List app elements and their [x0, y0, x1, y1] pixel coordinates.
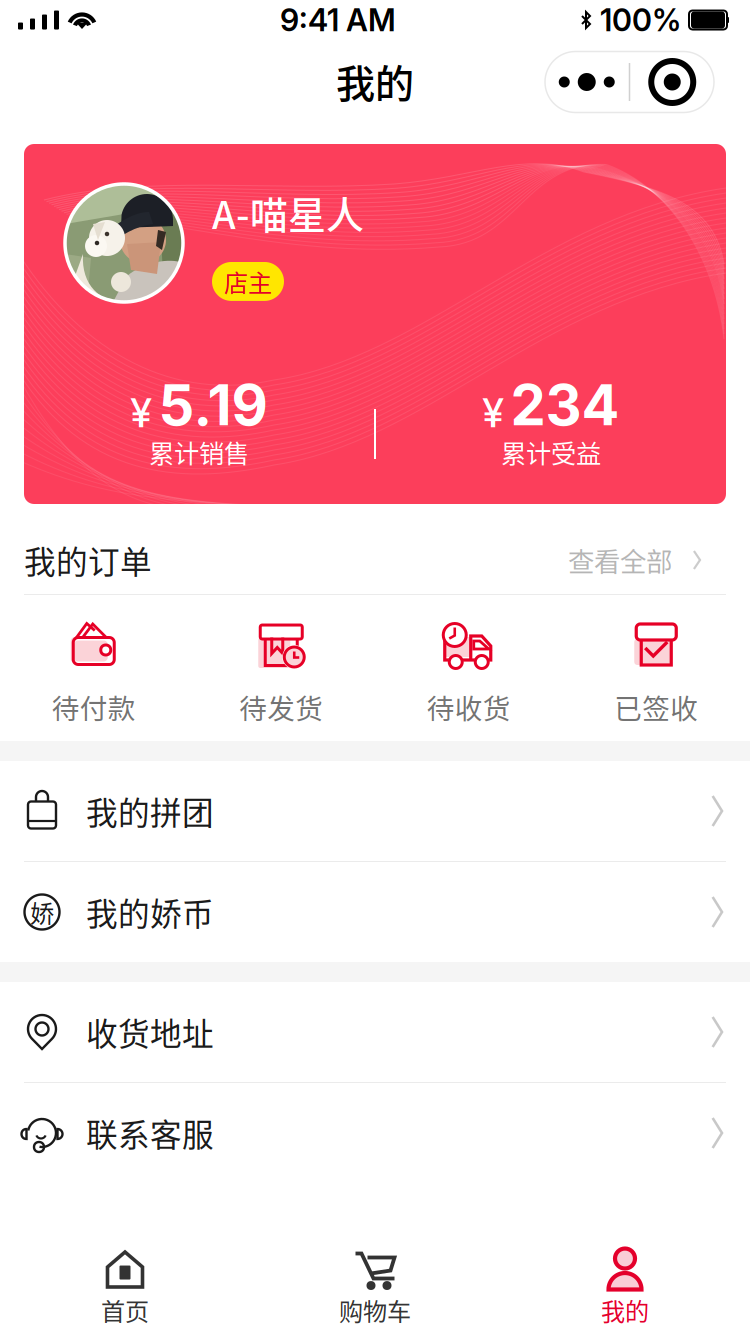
button[interactable]: More and mini program menu [545, 51, 714, 112]
staticText: 5.19 [158, 371, 267, 439]
staticText: 我的 [601, 1292, 649, 1327]
staticText: ¥ [482, 388, 503, 437]
staticText: 我的拼团 [86, 788, 214, 834]
staticText: 待收货 [427, 687, 511, 727]
button[interactable]: 我的拼团 [0, 761, 750, 861]
button[interactable]: 我的 [500, 1236, 750, 1334]
staticText: 100% [600, 1, 681, 38]
staticText: 我的 [336, 53, 414, 109]
staticText: A-喵星人 [212, 185, 364, 240]
staticText: 已签收 [614, 687, 698, 727]
staticText: 联系客服 [86, 1110, 214, 1156]
button[interactable]: 收货地址 [0, 982, 750, 1082]
staticText: 234 [510, 371, 619, 439]
staticText: 9:41 AM [280, 1, 396, 38]
staticText: 首页 [101, 1292, 149, 1327]
staticText: 累计受益 [501, 434, 601, 470]
staticText: 收货地址 [86, 1009, 214, 1055]
staticText: 查看全部 [568, 541, 672, 579]
staticText: 我的订单 [24, 537, 152, 583]
staticText: 待付款 [52, 687, 136, 727]
button[interactable]: 购物车 [250, 1236, 500, 1334]
button[interactable]: 联系客服 [0, 1083, 750, 1183]
staticText: ¥ [130, 388, 151, 437]
button[interactable]: 待付款 [0, 623, 187, 727]
staticText: 待发货 [239, 687, 323, 727]
button[interactable]: 已签收 [562, 623, 750, 727]
staticText: 购物车 [339, 1292, 411, 1327]
button[interactable]: 待发货 [187, 623, 375, 727]
button[interactable]: 首页 [0, 1236, 250, 1334]
staticText: 店主 [224, 264, 272, 299]
staticText: 娇 [30, 894, 54, 929]
staticText: 我的娇币 [86, 889, 214, 935]
button[interactable]: 娇 [0, 862, 750, 962]
staticText: 累计销售 [149, 434, 249, 470]
button[interactable]: 我的订单 [0, 504, 750, 594]
button[interactable]: 待收货 [375, 623, 562, 727]
